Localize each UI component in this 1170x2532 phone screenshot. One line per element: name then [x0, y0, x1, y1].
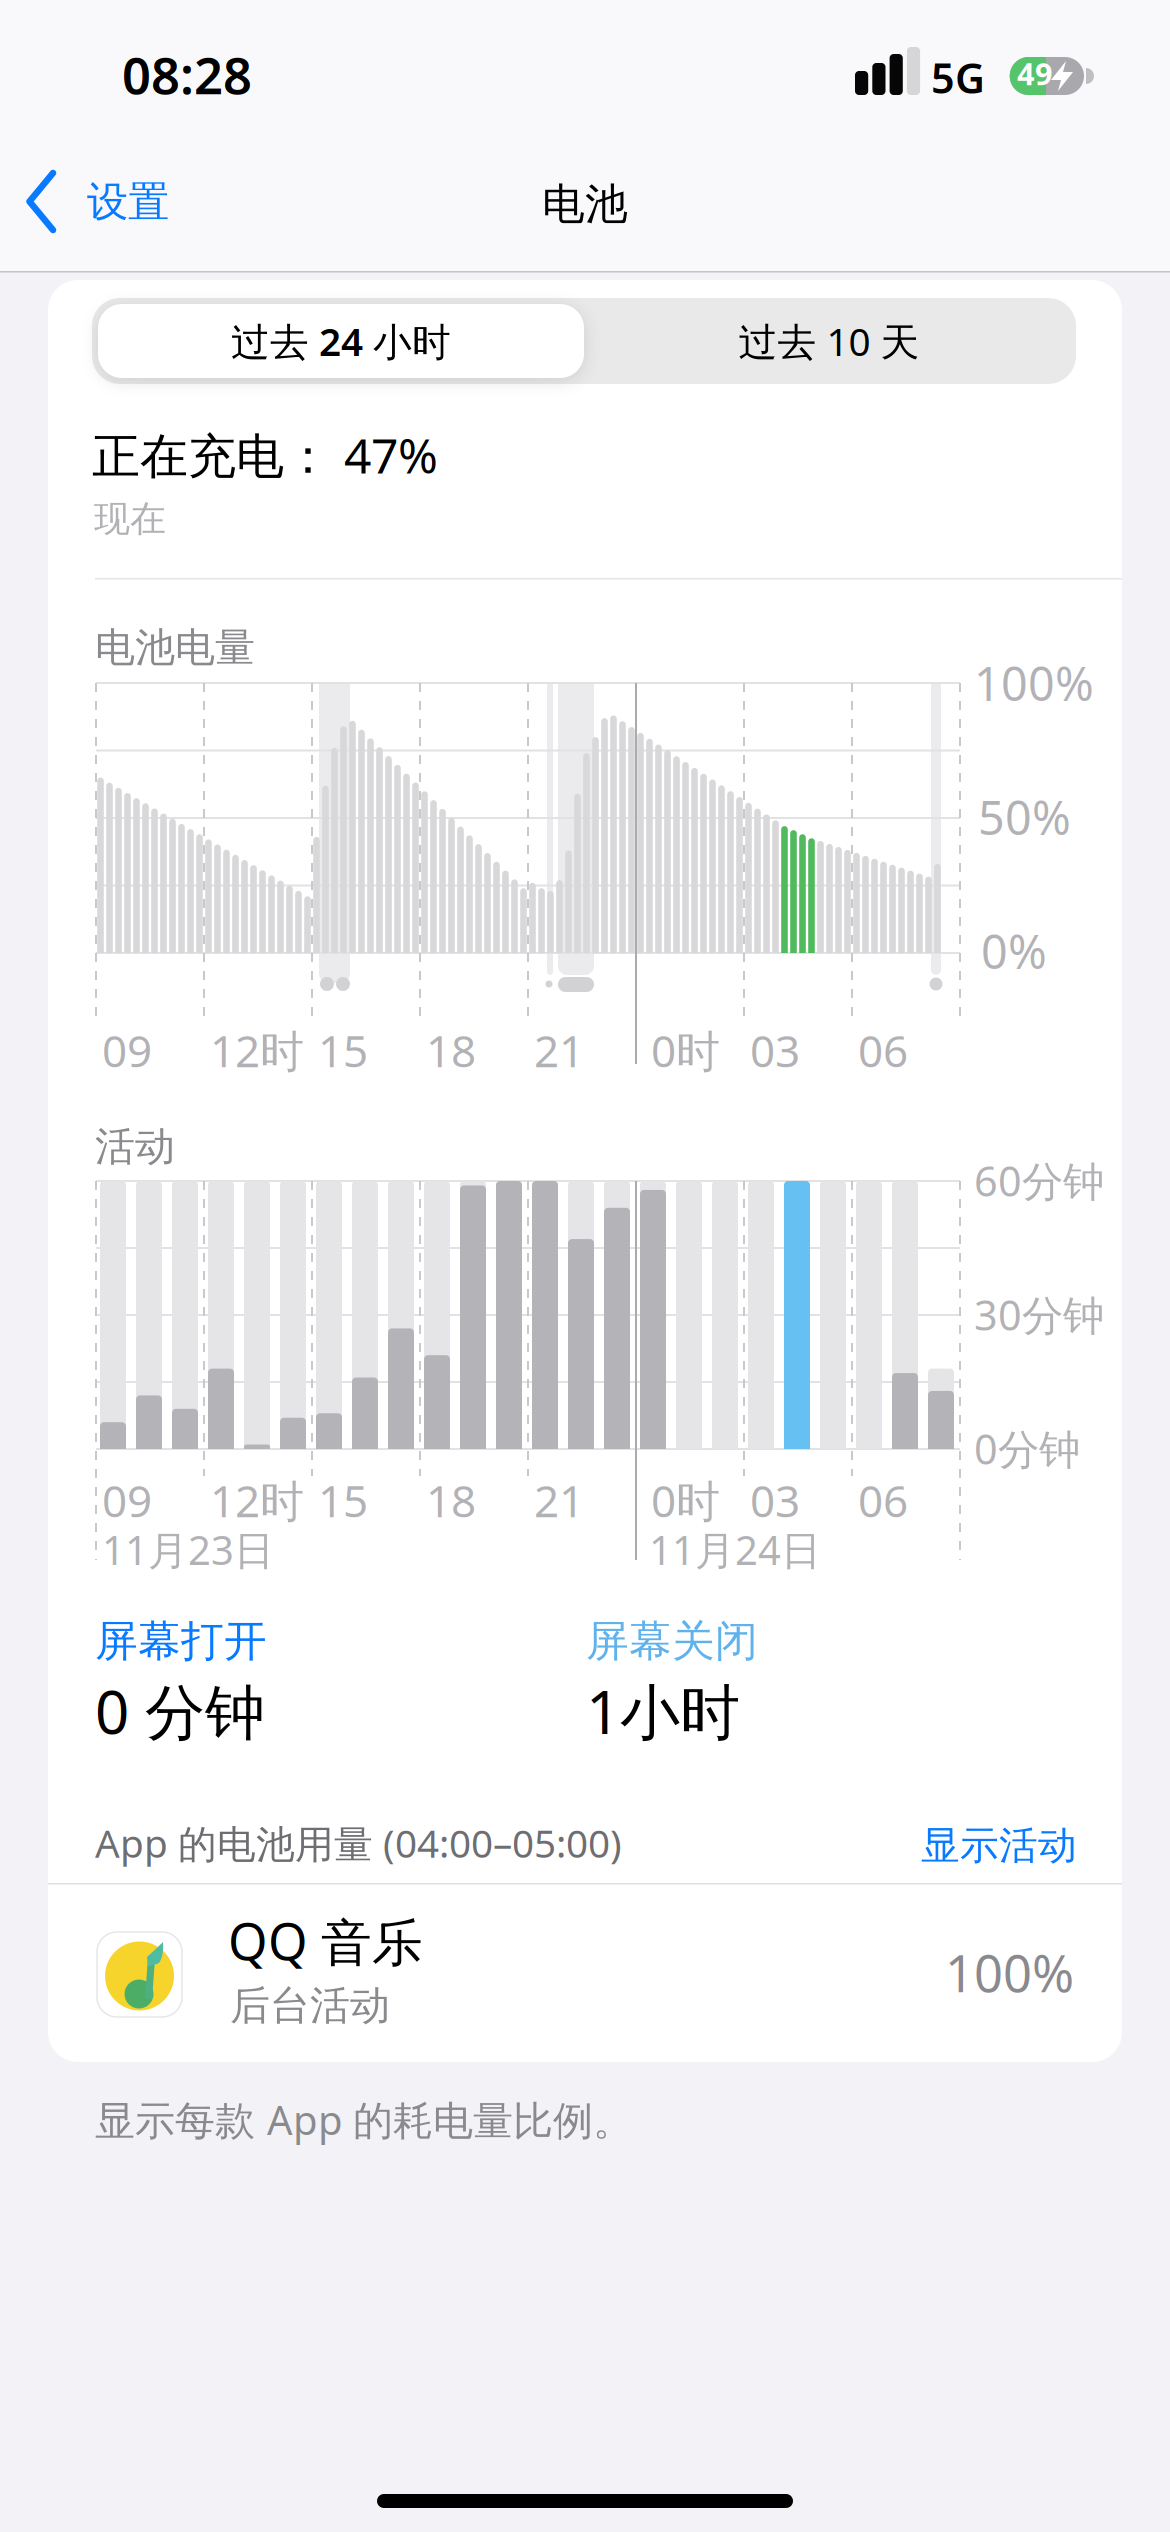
- staticText: 09: [102, 1471, 152, 1529]
- staticText: 30分钟: [974, 1287, 1104, 1342]
- staticText: 0时: [651, 1021, 720, 1079]
- staticText: App 的电池用量 (04:00–05:00): [95, 1817, 622, 1868]
- button[interactable]: 显示活动: [0, 1822, 1170, 1869]
- staticText: 电池电量: [95, 623, 255, 672]
- staticText: 5G: [931, 50, 985, 105]
- staticText: 100%: [974, 652, 1094, 714]
- staticText: 电池: [542, 178, 628, 230]
- staticText: 屏幕关闭: [586, 1615, 758, 1667]
- staticText: 屏幕打开: [95, 1615, 267, 1667]
- staticText: 18: [426, 1021, 476, 1079]
- staticText: 11月24日: [649, 1523, 821, 1576]
- staticText: QQ 音乐: [228, 1907, 423, 1974]
- staticText: 显示活动: [921, 1822, 1077, 1869]
- staticText: 11月23日: [102, 1523, 274, 1576]
- staticText: 12时: [210, 1471, 304, 1529]
- staticText: 21: [534, 1471, 584, 1529]
- staticText: 0分钟: [974, 1421, 1080, 1476]
- staticText: 18: [426, 1471, 476, 1529]
- staticText: 21: [534, 1021, 584, 1079]
- staticText: 过去 24 小时: [231, 315, 451, 367]
- staticText: 03: [750, 1021, 800, 1079]
- button[interactable]: 过去 10 天: [586, 304, 1072, 378]
- staticText: 0%: [981, 920, 1047, 982]
- staticText: 100%: [945, 1939, 1074, 2006]
- staticText: 活动: [95, 1122, 175, 1171]
- staticText: 49: [1017, 53, 1053, 94]
- staticText: 过去 10 天: [738, 315, 919, 367]
- staticText: 06: [858, 1471, 908, 1529]
- staticText: 06: [858, 1021, 908, 1079]
- staticText: 15: [318, 1021, 368, 1079]
- staticText: 正在充电： 47%: [92, 423, 438, 487]
- staticText: 显示每款 App 的耗电量比例。: [95, 2093, 633, 2146]
- staticText: 0 分钟: [95, 1671, 265, 1751]
- staticText: 0时: [651, 1471, 720, 1529]
- staticText: 现在: [94, 497, 166, 541]
- button[interactable]: 过去 24 小时: [98, 304, 584, 378]
- button[interactable]: QQ 音乐: [48, 1884, 1122, 2062]
- staticText: 50%: [978, 786, 1071, 848]
- staticText: 09: [102, 1021, 152, 1079]
- staticText: 后台活动: [230, 1981, 390, 2030]
- staticText: 1小时: [586, 1671, 740, 1751]
- staticText: 08:28: [122, 41, 252, 108]
- staticText: 12时: [210, 1021, 304, 1079]
- staticText: 15: [318, 1471, 368, 1529]
- button[interactable]: 设置: [0, 173, 1170, 231]
- staticText: 03: [750, 1471, 800, 1529]
- staticText: 设置: [87, 177, 169, 227]
- staticText: 60分钟: [974, 1153, 1104, 1208]
